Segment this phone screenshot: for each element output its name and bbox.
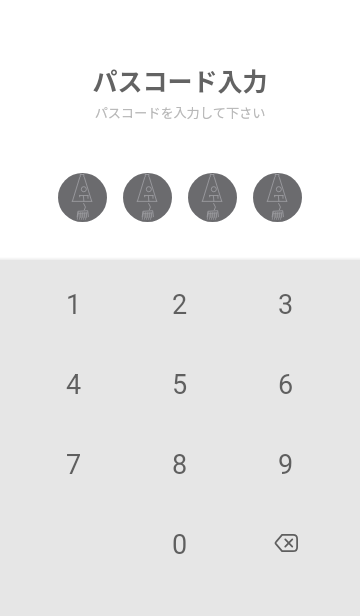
button[interactable]: 0 [127, 505, 233, 585]
staticText: 6 [278, 369, 294, 401]
button[interactable]: 4 [21, 345, 127, 425]
staticText: パスコードを入力して下さい [94, 103, 266, 122]
button[interactable]: Delete [233, 505, 339, 585]
staticText: パスコード入力 [92, 62, 268, 98]
button[interactable]: 9 [233, 425, 339, 505]
staticText: 7 [66, 449, 82, 481]
staticText: 4 [66, 369, 82, 401]
staticText: 1 [66, 289, 82, 321]
staticText: 0 [172, 529, 188, 561]
button[interactable]: 1 [21, 265, 127, 345]
button[interactable]: 2 [127, 265, 233, 345]
button[interactable]: 8 [127, 425, 233, 505]
staticText: 8 [172, 449, 188, 481]
button[interactable]: 6 [233, 345, 339, 425]
staticText: 9 [278, 449, 294, 481]
staticText: 3 [278, 289, 294, 321]
button[interactable]: 5 [127, 345, 233, 425]
staticText: 5 [172, 369, 188, 401]
button[interactable]: 3 [233, 265, 339, 345]
button[interactable]: 7 [21, 425, 127, 505]
staticText: 2 [172, 289, 188, 321]
